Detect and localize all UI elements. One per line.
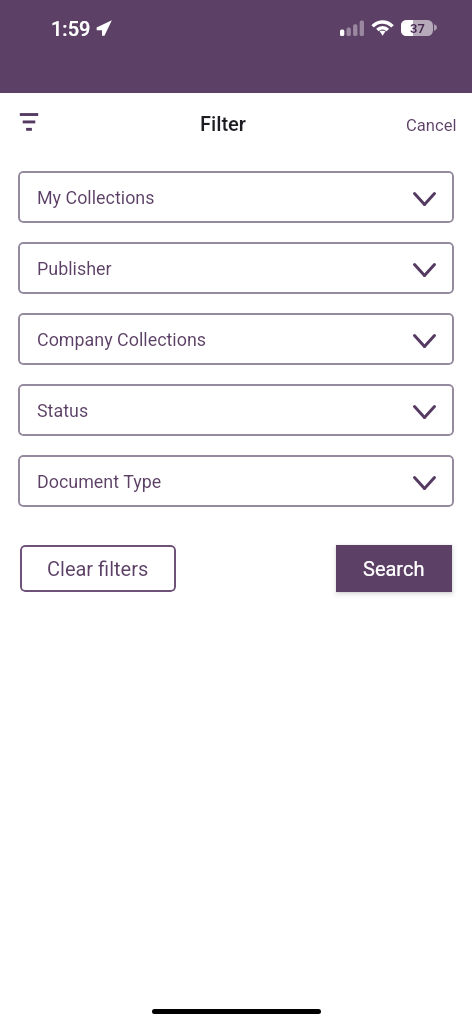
staticText: Filter <box>200 112 247 135</box>
staticText: My Collections <box>37 187 155 208</box>
staticText: Clear filters <box>47 557 149 580</box>
button[interactable]: Filter options <box>7 100 51 144</box>
staticText: Document Type <box>37 471 162 492</box>
staticText: Cancel <box>406 116 457 135</box>
button[interactable]: My Collections <box>18 171 454 223</box>
button[interactable]: Status <box>18 384 454 436</box>
staticText: Publisher <box>37 258 112 279</box>
button[interactable]: Search <box>336 545 452 592</box>
staticText: Company Collections <box>37 329 207 350</box>
button[interactable]: Cancel <box>398 109 465 142</box>
button[interactable]: Clear filters <box>20 545 176 592</box>
staticText: 37 <box>410 21 425 36</box>
button[interactable]: Document Type <box>18 455 454 507</box>
staticText: Search <box>363 557 425 580</box>
button[interactable]: Publisher <box>18 242 454 294</box>
staticText: Status <box>37 400 89 421</box>
button[interactable]: Company Collections <box>18 313 454 365</box>
staticText: 1:59 <box>51 17 91 40</box>
